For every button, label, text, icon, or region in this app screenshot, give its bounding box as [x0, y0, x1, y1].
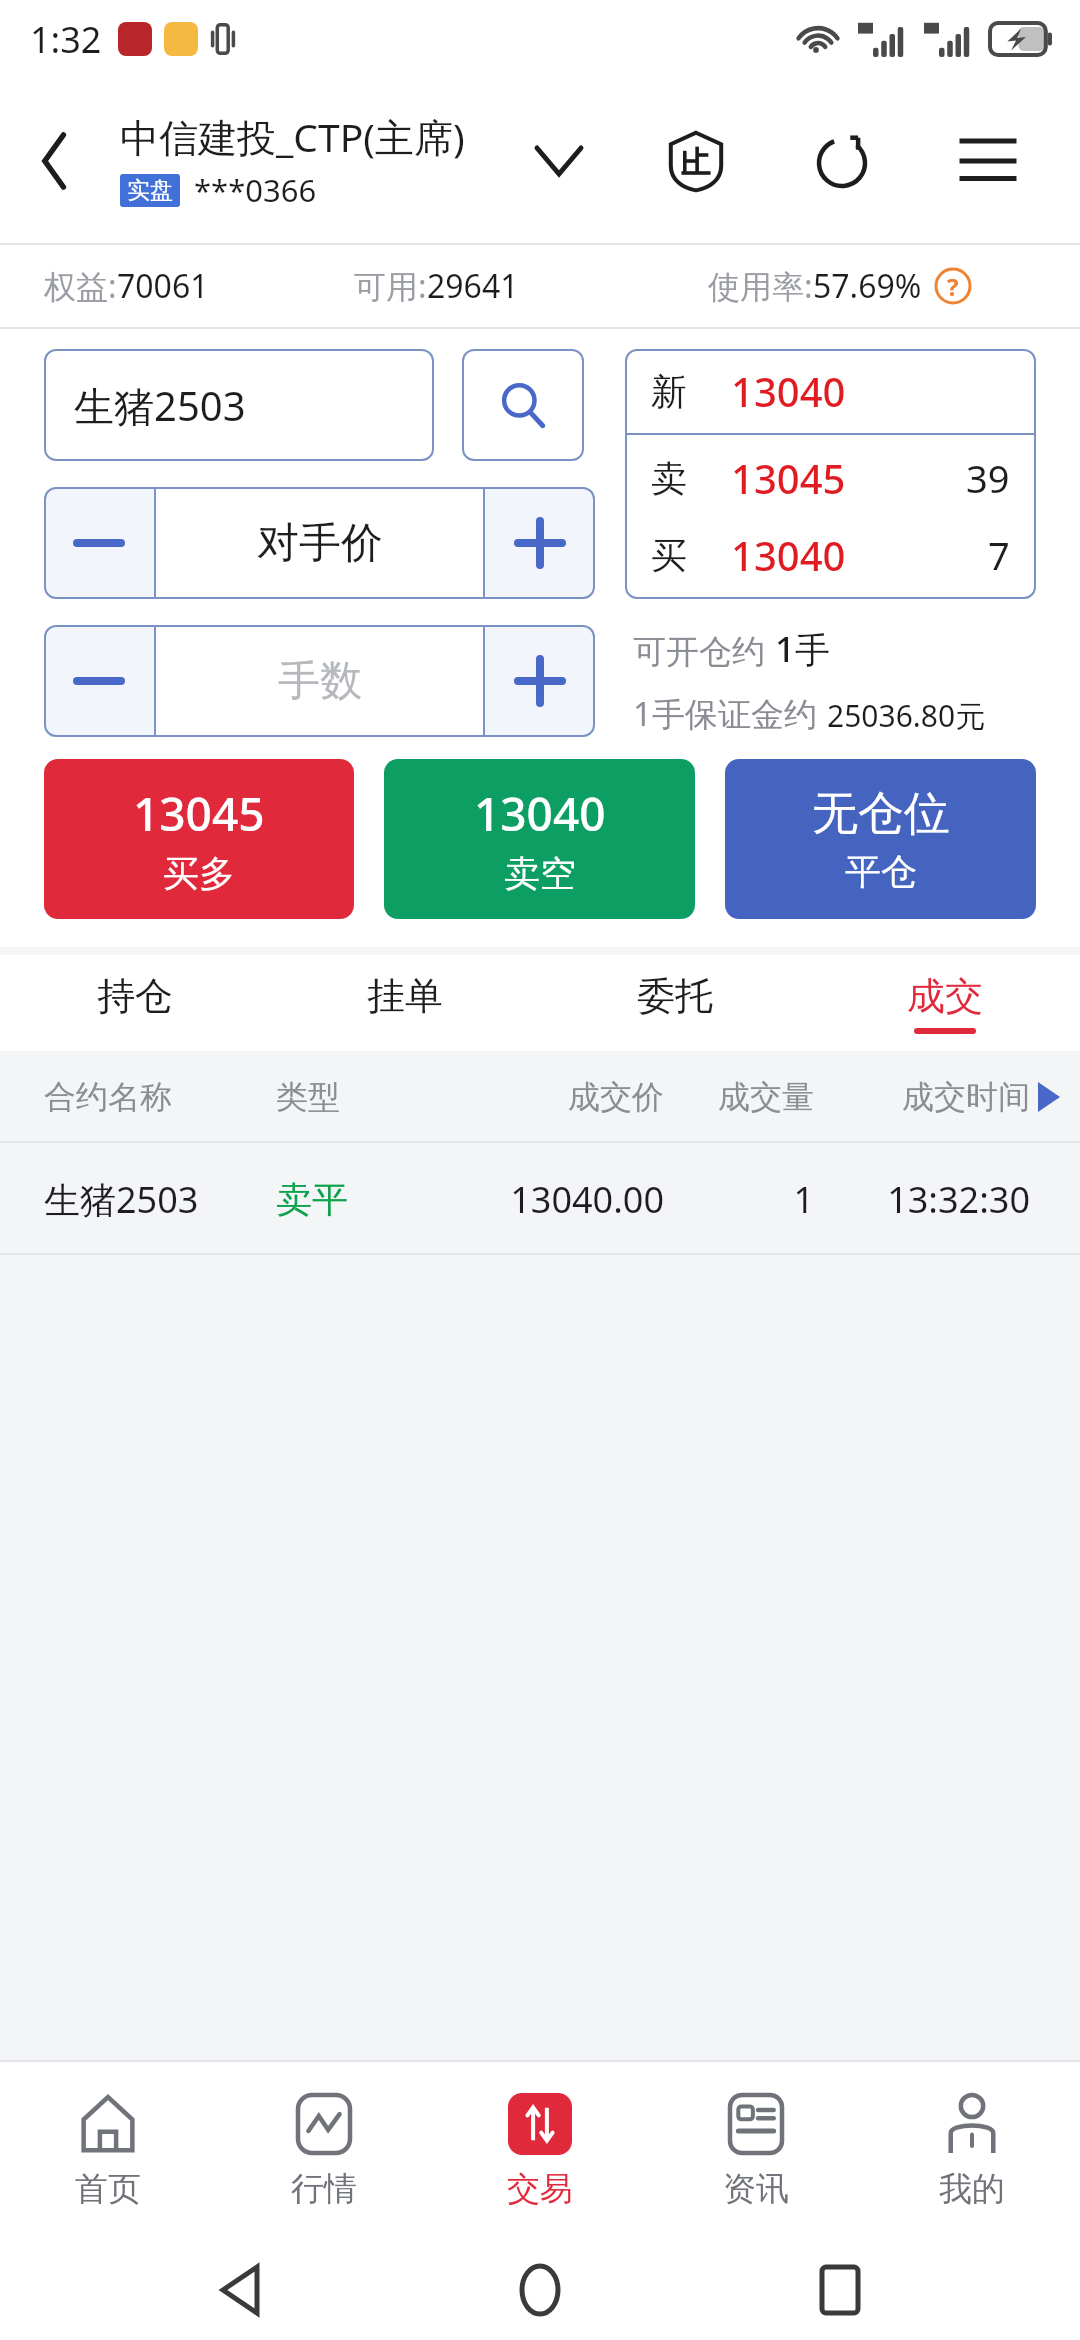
- staticText: 手数: [278, 655, 362, 708]
- button[interactable]: 成交: [810, 955, 1080, 1051]
- button[interactable]: 13045: [44, 759, 354, 919]
- staticText: 委托: [637, 972, 713, 1020]
- staticText: 1手保证金约: [633, 691, 817, 736]
- button[interactable]: 无仓位: [725, 759, 1036, 919]
- button[interactable]: 首页: [0, 2062, 216, 2240]
- staticText: 70061: [117, 264, 209, 308]
- staticText: 可开仓约: [633, 631, 765, 673]
- button[interactable]: 行情: [216, 2062, 432, 2240]
- staticText: 合约名称: [44, 1077, 276, 1117]
- staticText: 平仓: [845, 849, 917, 894]
- staticText: 1:32: [30, 15, 102, 64]
- button[interactable]: Decrease: [44, 487, 154, 599]
- staticText: 成交: [907, 972, 983, 1020]
- button[interactable]: 新: [625, 349, 1036, 599]
- staticText: ?: [947, 270, 959, 303]
- button[interactable]: 生猪2503: [44, 349, 434, 461]
- staticText: 我的: [939, 2168, 1005, 2210]
- staticText: 29641: [427, 264, 519, 308]
- staticText: ***0366: [194, 169, 317, 211]
- staticText: 卖: [651, 456, 731, 501]
- button[interactable]: Refresh: [794, 113, 890, 209]
- button[interactable]: 生猪2503: [0, 1143, 1080, 1255]
- button[interactable]: Back: [180, 2240, 300, 2340]
- button[interactable]: Increase: [485, 487, 595, 599]
- staticText: 7: [988, 529, 1010, 581]
- button[interactable]: Switch account: [520, 122, 598, 200]
- button[interactable]: Decrease: [44, 625, 154, 737]
- staticText: 中信建投_CTP(主席): [120, 110, 465, 163]
- button[interactable]: 手数: [156, 625, 483, 737]
- staticText: 交易: [507, 2168, 573, 2210]
- button[interactable]: Help: [932, 265, 974, 307]
- staticText: 实盘: [127, 176, 173, 205]
- staticText: 持仓: [97, 972, 173, 1020]
- staticText: 权益:: [44, 264, 117, 308]
- button[interactable]: Search: [462, 349, 584, 461]
- staticText: 行情: [291, 2168, 357, 2210]
- button[interactable]: 挂单: [270, 955, 540, 1051]
- staticText: 首页: [75, 2168, 141, 2210]
- staticText: 对手价: [257, 517, 383, 570]
- staticText: 1手: [775, 625, 831, 673]
- staticText: 使用率:: [708, 264, 813, 308]
- staticText: 13040: [474, 782, 606, 845]
- button[interactable]: Increase: [485, 625, 595, 737]
- staticText: 新: [651, 369, 731, 414]
- button[interactable]: Stop loss: [648, 113, 744, 209]
- button[interactable]: 委托: [540, 955, 810, 1051]
- staticText: 卖平: [276, 1177, 484, 1222]
- staticText: 买: [651, 533, 731, 578]
- staticText: 13045: [133, 782, 265, 845]
- staticText: 13040.00: [484, 1175, 664, 1224]
- staticText: 25036.80元: [827, 695, 986, 736]
- button[interactable]: 对手价: [156, 487, 483, 599]
- staticText: 成交量: [664, 1077, 814, 1117]
- staticText: 资讯: [723, 2168, 789, 2210]
- staticText: 类型: [276, 1077, 484, 1117]
- staticText: 挂单: [367, 972, 443, 1020]
- staticText: 成交时间: [836, 1077, 1030, 1117]
- staticText: 1: [664, 1175, 814, 1224]
- staticText: 生猪2503: [74, 378, 246, 433]
- button[interactable]: 我的: [864, 2062, 1080, 2240]
- staticText: 生猪2503: [44, 1175, 276, 1224]
- button[interactable]: 13040: [384, 759, 695, 919]
- staticText: 买多: [163, 851, 235, 896]
- button[interactable]: 持仓: [0, 955, 270, 1051]
- staticText: 无仓位: [812, 785, 950, 843]
- staticText: 13:32:30: [814, 1175, 1030, 1224]
- button[interactable]: 资讯: [648, 2062, 864, 2240]
- button[interactable]: 交易: [432, 2062, 648, 2240]
- button[interactable]: Home: [480, 2240, 600, 2340]
- staticText: 13040: [731, 364, 846, 418]
- staticText: 57.69%: [813, 264, 922, 308]
- button[interactable]: Menu: [940, 113, 1036, 209]
- button[interactable]: Back: [0, 78, 110, 243]
- staticText: 成交价: [484, 1077, 664, 1117]
- staticText: 13040: [731, 528, 846, 582]
- staticText: 13045: [731, 451, 846, 505]
- button[interactable]: 中信建投_CTP(主席): [120, 110, 465, 211]
- staticText: 可用:: [354, 264, 427, 308]
- staticText: 39: [966, 452, 1010, 504]
- staticText: 卖空: [504, 851, 576, 896]
- button[interactable]: Recents: [780, 2240, 900, 2340]
